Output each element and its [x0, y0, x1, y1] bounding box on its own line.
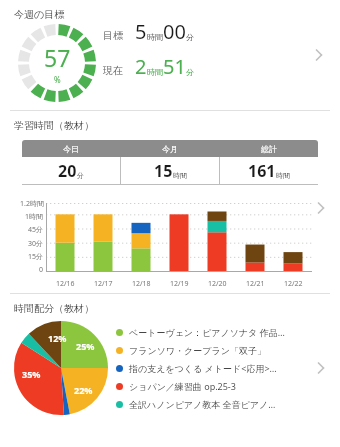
staticText: 分	[186, 32, 194, 42]
button[interactable]: フランソワ・クープラン「双子」	[116, 341, 340, 359]
staticText: 30分	[28, 239, 44, 249]
staticText: 2	[135, 53, 147, 80]
staticText: 学習時間（教材）	[14, 119, 94, 132]
button[interactable]: 詳細を表示	[308, 44, 330, 66]
staticText: 0	[39, 265, 44, 275]
staticText: 161	[248, 160, 276, 182]
staticText: 25%	[76, 340, 95, 352]
staticText: 12/18	[132, 279, 151, 289]
staticText: ベートーヴェン：ピアノソナタ 作品…	[129, 326, 285, 338]
staticText: 12/17	[94, 279, 113, 289]
staticText: 5	[135, 18, 147, 45]
staticText: %	[54, 74, 61, 85]
staticText: フランソワ・クープラン「双子」	[129, 345, 266, 356]
staticText: 今月	[162, 144, 178, 154]
staticText: 今日	[63, 144, 79, 154]
button[interactable]: 詳細を表示	[310, 197, 332, 219]
staticText: 12/16	[56, 279, 75, 289]
staticText: 今週の目標	[14, 8, 65, 21]
staticText: 20	[58, 160, 77, 182]
button[interactable]: ショパン／練習曲 op.25-3	[116, 377, 340, 395]
staticText: 00	[163, 18, 186, 45]
staticText: 時間配分（教材）	[14, 302, 94, 315]
staticText: 12/19	[170, 279, 189, 289]
button[interactable]: 全訳ハノンピアノ教本 全音ピアノ…	[116, 395, 340, 413]
staticText: 12/22	[284, 279, 303, 289]
staticText: 時間	[147, 32, 163, 42]
staticText: 15	[154, 160, 173, 182]
staticText: ショパン／練習曲 op.25-3	[129, 380, 236, 392]
staticText: 現在	[103, 64, 127, 77]
staticText: 全訳ハノンピアノ教本 全音ピアノ…	[129, 398, 276, 410]
staticText: 22%	[74, 384, 93, 396]
staticText: 目標	[103, 29, 127, 42]
button[interactable]: 今週の目標	[0, 0, 340, 110]
staticText: 45分	[28, 225, 44, 235]
staticText: 12/20	[208, 279, 227, 289]
staticText: 15分	[28, 252, 44, 262]
button[interactable]: 25%	[0, 321, 340, 415]
button[interactable]: 今日	[22, 140, 318, 185]
staticText: 分	[77, 171, 84, 180]
staticText: 時間	[147, 67, 163, 77]
staticText: 51	[163, 53, 186, 80]
staticText: 57	[44, 42, 71, 73]
staticText: 12/21	[246, 279, 265, 289]
staticText: 時間	[276, 171, 290, 180]
button[interactable]: 1.2時間	[0, 195, 340, 293]
staticText: 時間	[173, 171, 187, 180]
staticText: 1時間	[25, 212, 44, 222]
button[interactable]: ベートーヴェン：ピアノソナタ 作品…	[116, 323, 340, 341]
staticText: 指の支えをつくる メトード<応用>…	[129, 362, 277, 374]
staticText: 35%	[22, 368, 41, 380]
button[interactable]: 詳細を表示	[310, 357, 332, 379]
staticText: 12%	[48, 332, 67, 344]
staticText: 総計	[261, 144, 277, 154]
staticText: 1.2時間	[20, 199, 44, 209]
button[interactable]: 指の支えをつくる メトード<応用>…	[116, 359, 340, 377]
staticText: 分	[186, 67, 194, 77]
